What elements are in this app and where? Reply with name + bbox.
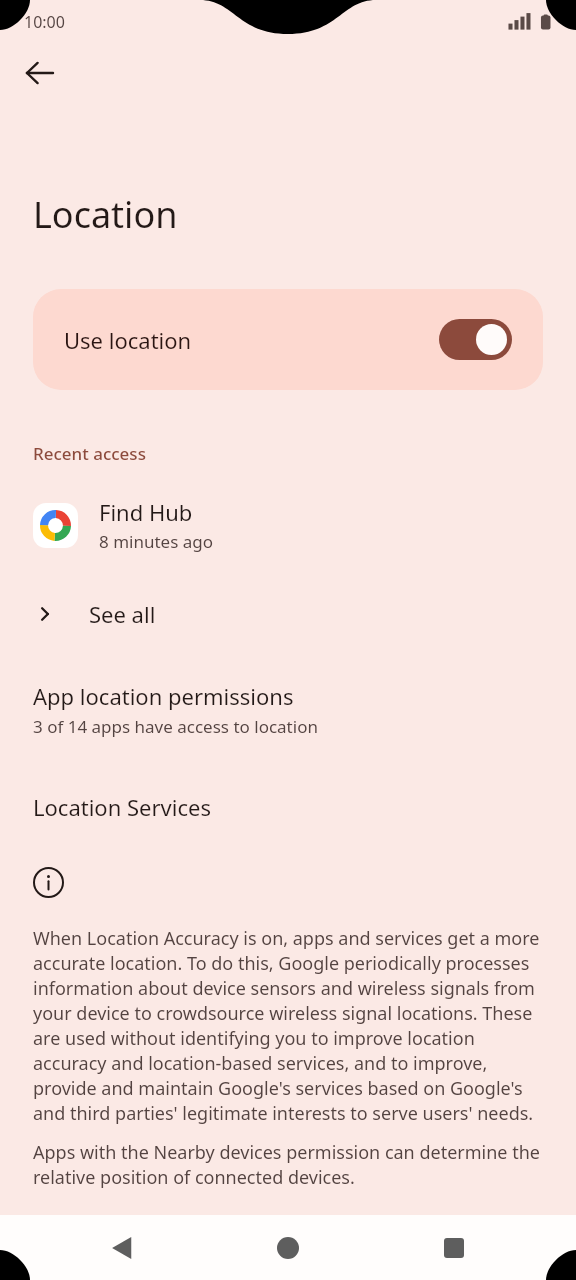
staticText: 8 minutes ago bbox=[99, 530, 214, 553]
other: Information bbox=[33, 867, 64, 898]
button[interactable]: Location Services bbox=[0, 790, 576, 824]
button[interactable]: Use location bbox=[33, 289, 543, 390]
button[interactable]: Back bbox=[92, 1218, 152, 1278]
staticText: App location permissions bbox=[33, 681, 294, 711]
button[interactable]: App location permissions bbox=[0, 679, 576, 740]
staticText: 10:00 bbox=[24, 11, 65, 33]
button[interactable]: Find Hub bbox=[0, 493, 576, 557]
staticText: Recent access bbox=[33, 442, 146, 465]
staticText: When Location Accuracy is on, apps and s… bbox=[33, 926, 546, 1126]
staticText: See all bbox=[89, 599, 156, 629]
button[interactable]: Home bbox=[258, 1218, 318, 1278]
staticText: Find Hub bbox=[99, 497, 193, 527]
staticText: 3 of 14 apps have access to location bbox=[33, 715, 318, 738]
button[interactable]: Recent apps bbox=[424, 1218, 484, 1278]
staticText: Use location bbox=[64, 325, 192, 355]
staticText: Apps with the Nearby devices permission … bbox=[33, 1140, 546, 1190]
button[interactable]: See all bbox=[0, 593, 576, 635]
button[interactable]: Back bbox=[10, 44, 68, 102]
staticText: Location bbox=[33, 190, 178, 239]
